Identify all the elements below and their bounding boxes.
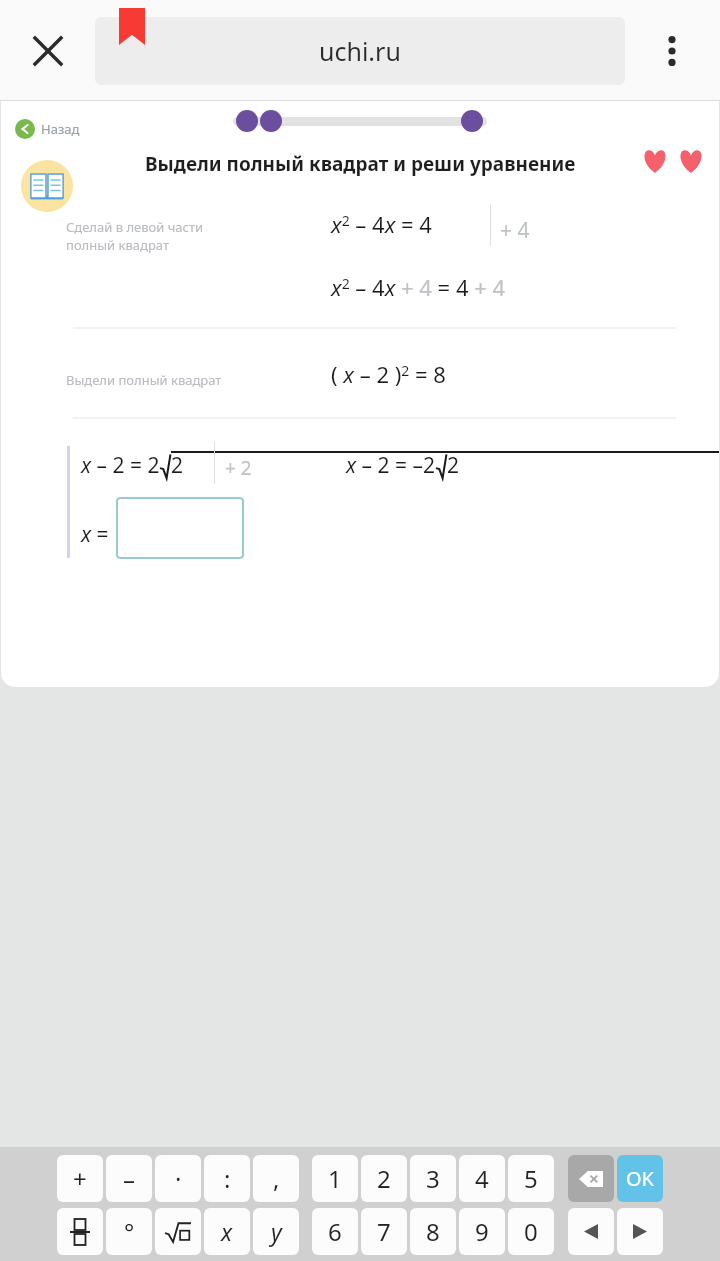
staticText: 2 — [171, 451, 184, 480]
button[interactable]: : — [204, 1155, 250, 1202]
button[interactable]: OK — [617, 1155, 663, 1202]
staticText: Назад — [41, 120, 80, 138]
staticText: ( x – 2 )2 = 8 — [331, 359, 446, 389]
staticText: uchi.ru — [319, 34, 401, 68]
button[interactable]: 8 — [410, 1208, 456, 1255]
button[interactable]: uchi.ru — [95, 17, 625, 85]
button[interactable]: 7 — [361, 1208, 407, 1255]
staticText: 2 — [447, 451, 460, 480]
staticText: x — [221, 1216, 233, 1247]
staticText: 6 — [328, 1215, 342, 1248]
button[interactable]: More options — [642, 21, 702, 81]
staticText: · — [175, 1162, 182, 1195]
button[interactable]: Square root — [155, 1208, 201, 1255]
button[interactable]: 0 — [508, 1208, 554, 1255]
button[interactable]: 2 — [361, 1155, 407, 1202]
staticText: ° — [124, 1215, 135, 1248]
button[interactable]: 4 — [459, 1155, 505, 1202]
button[interactable]: Close — [18, 21, 78, 81]
staticText: 2 — [377, 1162, 391, 1195]
staticText: 5 — [524, 1162, 538, 1195]
button[interactable]: Move right — [617, 1208, 663, 1255]
button[interactable]: Answer input — [116, 497, 244, 559]
staticText: + — [73, 1162, 87, 1195]
button[interactable]: Назад — [15, 119, 80, 139]
staticText: – — [123, 1162, 135, 1195]
button[interactable]: + — [57, 1155, 103, 1202]
staticText: y — [271, 1216, 282, 1247]
staticText: x2 – 4x + 4 = 4 + 4 — [331, 272, 506, 302]
button[interactable]: Fraction — [57, 1208, 103, 1255]
button[interactable]: Backspace — [568, 1155, 614, 1202]
staticText: 3 — [426, 1162, 440, 1195]
button[interactable]: y — [253, 1208, 299, 1255]
button[interactable]: , — [253, 1155, 299, 1202]
staticText: x – 2 = 2 — [81, 451, 160, 480]
button[interactable]: 1 — [312, 1155, 358, 1202]
button[interactable]: ° — [106, 1208, 152, 1255]
staticText: + 4 — [500, 216, 530, 245]
button[interactable]: 5 — [508, 1155, 554, 1202]
staticText: Сделай в левой части полный квадрат — [66, 218, 204, 254]
button[interactable]: Move left — [568, 1208, 614, 1255]
button[interactable]: 3 — [410, 1155, 456, 1202]
staticText: : — [224, 1162, 231, 1195]
staticText: 8 — [426, 1215, 440, 1248]
button[interactable]: x — [204, 1208, 250, 1255]
button[interactable]: – — [106, 1155, 152, 1202]
staticText: OK — [626, 1165, 654, 1192]
staticText: 7 — [377, 1215, 391, 1248]
staticText: 4 — [475, 1162, 489, 1195]
staticText: x2 – 4x = 4 — [331, 209, 432, 239]
button[interactable]: 9 — [459, 1208, 505, 1255]
staticText: x – 2 = –2 — [346, 451, 436, 480]
button[interactable]: 6 — [312, 1208, 358, 1255]
staticText: Выдели полный квадрат и реши уравнение — [145, 151, 576, 177]
staticText: 0 — [524, 1215, 538, 1248]
staticText: , — [273, 1162, 280, 1195]
staticText: 9 — [475, 1215, 489, 1248]
staticText: x = — [81, 520, 109, 549]
staticText: Выдели полный квадрат — [66, 371, 222, 389]
button[interactable]: · — [155, 1155, 201, 1202]
staticText: 1 — [328, 1162, 342, 1195]
staticText: + 2 — [225, 455, 252, 481]
